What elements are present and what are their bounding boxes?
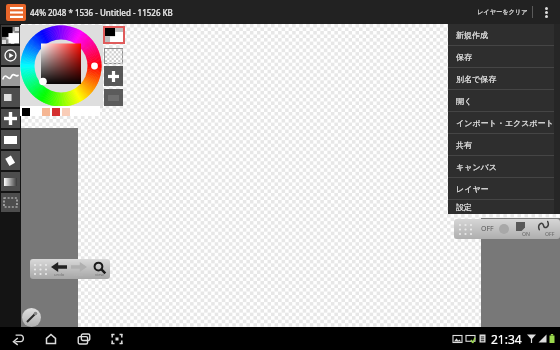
staticText: キャンバス: [456, 162, 497, 172]
button[interactable]: Recents: [75, 330, 93, 348]
button[interactable]: Tool: [1, 88, 20, 107]
button[interactable]: 新規作成: [448, 24, 560, 45]
staticText: レイヤー: [456, 184, 489, 194]
button[interactable]: Screenshot: [108, 330, 126, 348]
staticText: redo: [74, 272, 84, 278]
staticText: 44% 2048 * 1536 - Untitled - 11526 KB: [30, 7, 173, 18]
staticText: undo: [54, 272, 65, 278]
staticText: OFF: [481, 224, 494, 234]
button[interactable]: Menu: [6, 4, 26, 21]
button[interactable]: Tool: [1, 130, 20, 149]
staticText: インポート・エクスポート: [456, 118, 554, 128]
button[interactable]: レイヤーをクリア: [474, 8, 531, 16]
button[interactable]: Tool: [1, 172, 20, 191]
button[interactable]: Tool: [1, 151, 20, 170]
button[interactable]: Layer 1: [105, 28, 123, 42]
staticText: 共有: [456, 140, 472, 150]
staticText: 新規作成: [456, 30, 488, 40]
button[interactable]: Snap on: [515, 219, 535, 239]
button[interactable]: Duplicate layer: [104, 89, 123, 106]
button[interactable]: Smoothing off: [537, 219, 559, 239]
button[interactable]: Brush size: [22, 308, 41, 327]
staticText: OFF: [545, 230, 555, 237]
button[interactable]: レイヤー: [448, 178, 560, 199]
button[interactable]: view: [89, 259, 109, 279]
button[interactable]: undo: [49, 259, 69, 279]
button[interactable]: redo: [69, 259, 89, 279]
staticText: レイヤーをクリア: [477, 8, 528, 16]
staticText: 保存: [456, 52, 472, 62]
button[interactable]: 設定: [448, 200, 560, 214]
staticText: view: [95, 272, 104, 278]
button[interactable]: 別名で保存: [448, 68, 560, 89]
staticText: 21:34: [491, 331, 522, 347]
button[interactable]: Home: [42, 330, 60, 348]
button[interactable]: 共有: [448, 134, 560, 155]
button[interactable]: More options: [533, 0, 560, 24]
button[interactable]: インポート・エクスポート: [448, 112, 560, 133]
button[interactable]: Tool: [1, 67, 20, 86]
button[interactable]: Tool: [1, 193, 20, 212]
staticText: 設定: [456, 202, 472, 212]
button[interactable]: Tool: [1, 25, 20, 44]
button[interactable]: Back: [9, 330, 27, 348]
button[interactable]: Layer 2: [105, 49, 122, 63]
button[interactable]: Stabilizer off: [481, 224, 494, 234]
button[interactable]: Add layer: [104, 66, 123, 86]
button[interactable]: Tool: [1, 109, 20, 128]
staticText: ON: [522, 230, 530, 237]
staticText: 開く: [456, 96, 473, 106]
button[interactable]: 開く: [448, 90, 560, 111]
button[interactable]: キャンバス: [448, 156, 560, 177]
button[interactable]: 保存: [448, 46, 560, 67]
staticText: 別名で保存: [456, 74, 497, 84]
button[interactable]: Tool: [1, 46, 20, 65]
